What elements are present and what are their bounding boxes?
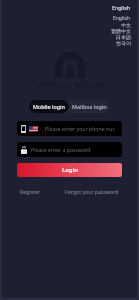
- button[interactable]: Mailbox login: [69, 100, 110, 113]
- button[interactable]: Mobile login: [29, 100, 69, 113]
- other: Password: [21, 146, 27, 154]
- button[interactable]: Login: [17, 163, 122, 177]
- button[interactable]: 한국어: [114, 40, 133, 46]
- staticText: English: [113, 15, 131, 22]
- staticText: Forgot your password: [65, 188, 119, 195]
- staticText: Mobile login: [33, 103, 65, 110]
- staticText: ·: [40, 125, 42, 132]
- button[interactable]: 日本語: [114, 34, 133, 40]
- button[interactable]: Password: [17, 142, 122, 157]
- button[interactable]: Register: [18, 186, 43, 197]
- staticText: Please enter your phone nur: [45, 125, 115, 132]
- button[interactable]: 繁體中文: [109, 28, 133, 34]
- staticText: 繁體中文: [111, 28, 131, 34]
- button[interactable]: English: [111, 15, 133, 22]
- other: Phone: [21, 125, 26, 133]
- staticText: 日本語: [116, 34, 131, 40]
- staticText: English: [112, 4, 130, 11]
- staticText: Mailbox login: [72, 103, 107, 110]
- staticText: Login: [62, 166, 78, 174]
- staticText: Register: [20, 188, 41, 195]
- staticText: ORIENTAL WEALTH: [35, 81, 105, 89]
- button[interactable]: Phone: [17, 121, 122, 136]
- button[interactable]: Forgot your password: [63, 186, 121, 197]
- staticText: Please enter a password: [31, 146, 91, 153]
- button[interactable]: English: [110, 3, 132, 12]
- staticText: 한국어: [116, 40, 131, 46]
- button[interactable]: 中文: [119, 22, 133, 28]
- staticText: 中文: [121, 22, 131, 28]
